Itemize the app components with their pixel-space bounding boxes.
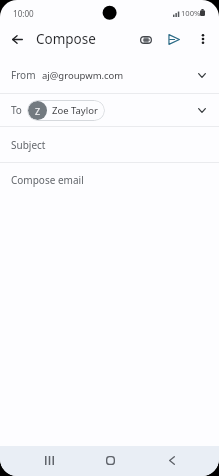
button[interactable]: Z bbox=[27, 100, 105, 121]
staticText: To bbox=[11, 103, 22, 117]
button[interactable]: Send bbox=[160, 25, 188, 53]
staticText: 100% bbox=[181, 8, 201, 18]
button[interactable]: Compose email bbox=[0, 163, 219, 197]
staticText: Z bbox=[35, 105, 41, 117]
staticText: Zoe Taylor bbox=[52, 104, 98, 117]
staticText: Compose email bbox=[11, 173, 84, 187]
staticText: 10:00 bbox=[13, 8, 34, 19]
button[interactable]: Attach file bbox=[132, 26, 160, 54]
button[interactable]: Subject bbox=[0, 127, 219, 162]
staticText: Compose bbox=[36, 30, 96, 48]
staticText: From bbox=[11, 68, 36, 82]
button[interactable]: Navigate up bbox=[3, 25, 31, 53]
button[interactable]: Back bbox=[149, 445, 195, 475]
button[interactable]: To bbox=[0, 94, 219, 126]
staticText: aj@groupwm.com bbox=[42, 69, 124, 82]
button[interactable]: More options bbox=[189, 25, 217, 53]
button[interactable]: Recent apps bbox=[26, 445, 72, 475]
button[interactable]: Home bbox=[87, 445, 133, 475]
staticText: Subject bbox=[11, 138, 46, 152]
button[interactable]: From bbox=[0, 57, 219, 93]
